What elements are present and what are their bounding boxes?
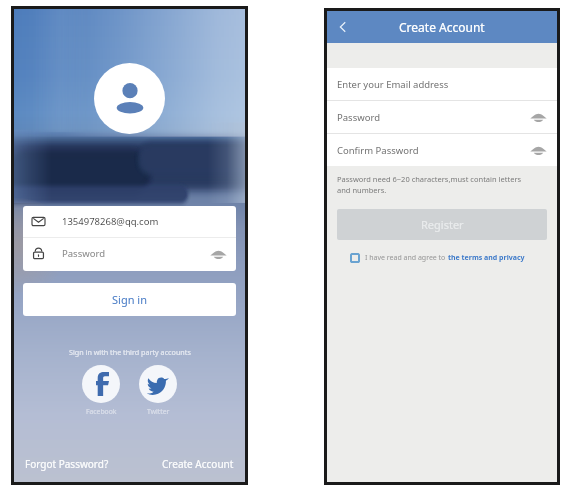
staticText: Twitter	[147, 407, 170, 416]
button[interactable]: Register	[337, 209, 547, 240]
other: Show password	[530, 111, 547, 123]
button[interactable]: Agree to terms	[350, 253, 360, 263]
button[interactable]: Forgot Password?	[25, 457, 109, 471]
staticText: Sign in with the third party accounts	[69, 347, 191, 357]
staticText: Facebook	[86, 407, 117, 416]
button[interactable]: Twitter	[139, 365, 177, 403]
staticText: Password need 6~20 characters,must conta…	[337, 174, 522, 195]
other: Show password	[210, 248, 227, 260]
staticText: I have read and agree to	[365, 253, 448, 263]
staticText: Enter your Email address	[337, 78, 449, 91]
staticText: 1354978268@qq.com	[62, 215, 159, 228]
staticText: Sign in	[112, 292, 147, 307]
staticText: Password	[337, 111, 380, 124]
button[interactable]: Back	[331, 15, 355, 39]
button[interactable]: Create Account	[162, 457, 234, 471]
button[interactable]: Facebook	[82, 365, 120, 403]
button[interactable]: Sign in	[23, 283, 236, 316]
staticText: Create Account	[399, 19, 485, 35]
staticText: Confirm Password	[337, 144, 419, 157]
button[interactable]: the terms and privacy	[448, 253, 525, 263]
staticText: Password	[62, 247, 105, 260]
staticText: Register	[421, 217, 464, 232]
other: Show password	[530, 144, 547, 156]
